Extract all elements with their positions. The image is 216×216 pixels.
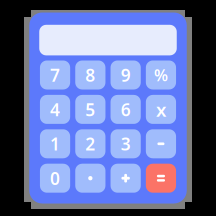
button[interactable]: Plus xyxy=(110,164,141,193)
button[interactable]: 9 xyxy=(110,60,141,89)
button[interactable]: 2 xyxy=(75,129,105,158)
button[interactable]: % xyxy=(146,60,176,89)
staticText: 1 xyxy=(50,132,60,155)
button[interactable]: x xyxy=(146,95,176,124)
button[interactable]: Equals xyxy=(146,164,176,193)
staticText: 7 xyxy=(50,63,60,86)
button[interactable]: 3 xyxy=(110,129,141,158)
staticText: % xyxy=(154,64,168,86)
button[interactable]: 4 xyxy=(40,95,70,124)
button[interactable]: 6 xyxy=(110,95,141,124)
staticText: 2 xyxy=(85,132,95,155)
staticText: x xyxy=(156,97,166,122)
staticText: 0 xyxy=(50,167,60,190)
staticText: 4 xyxy=(50,98,60,121)
button[interactable]: 1 xyxy=(40,129,70,158)
button[interactable]: Minus xyxy=(146,129,176,158)
staticText: 8 xyxy=(85,63,95,86)
button[interactable]: 7 xyxy=(40,60,70,89)
staticText: 5 xyxy=(85,98,95,121)
staticText: 6 xyxy=(121,98,131,121)
button[interactable]: 0 xyxy=(40,164,70,193)
button[interactable]: Decimal point xyxy=(75,164,105,193)
staticText: 3 xyxy=(121,132,131,155)
staticText: 9 xyxy=(121,63,131,86)
button[interactable]: 5 xyxy=(75,95,105,124)
button[interactable]: 8 xyxy=(75,60,105,89)
